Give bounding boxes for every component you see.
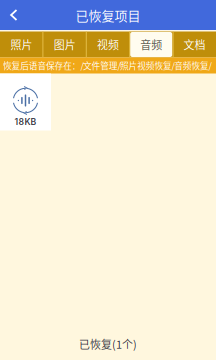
- staticText: 图片: [54, 37, 76, 52]
- button[interactable]: 音频: [130, 31, 173, 57]
- staticText: 恢复后语音保存在：/文件管理/照片视频恢复/音频恢复/: [3, 59, 212, 72]
- staticText: 音频: [140, 37, 162, 52]
- staticText: 文档: [183, 37, 205, 52]
- button[interactable]: 18KB: [0, 73, 51, 130]
- staticText: 18KB: [14, 116, 36, 127]
- staticText: 已恢复项目: [75, 5, 140, 24]
- staticText: 照片: [11, 37, 33, 52]
- staticText: 已恢复(1个): [79, 336, 137, 352]
- button[interactable]: 文档: [173, 31, 216, 57]
- button[interactable]: 图片: [43, 31, 86, 57]
- staticText: 视频: [97, 37, 119, 52]
- button[interactable]: 照片: [0, 31, 43, 57]
- button[interactable]: 视频: [86, 31, 130, 57]
- button[interactable]: Back: [0, 0, 28, 30]
